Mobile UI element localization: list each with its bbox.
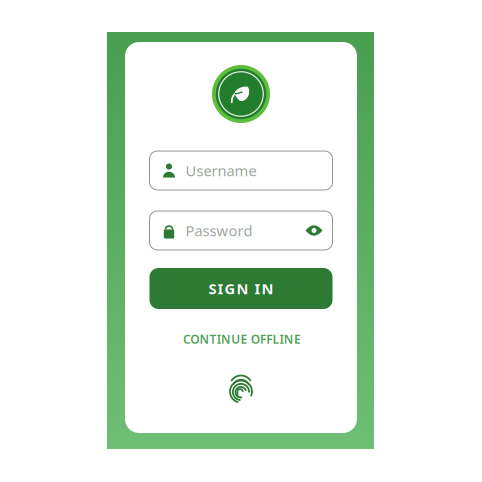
staticText: S I G N I N: [208, 279, 273, 298]
button[interactable]: Sign in with Touch ID: [125, 372, 357, 402]
staticText: Username: [185, 161, 256, 180]
button[interactable]: S I G N I N: [149, 268, 332, 309]
staticText: CONTINUE OFFLINE: [183, 331, 301, 347]
button[interactable]: CONTINUE OFFLINE: [183, 331, 301, 347]
staticText: Password: [185, 221, 252, 240]
